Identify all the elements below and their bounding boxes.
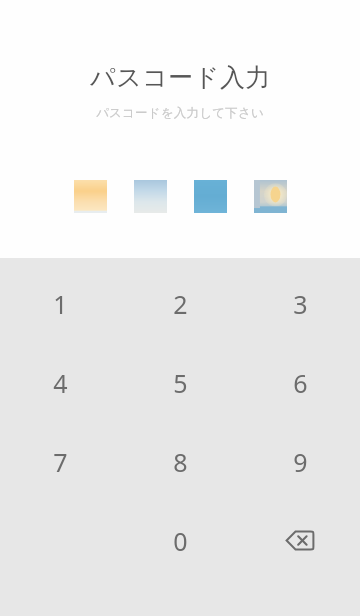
staticText: 1: [53, 287, 68, 321]
button[interactable]: 8: [120, 422, 240, 501]
staticText: 6: [293, 366, 308, 400]
button[interactable]: 5: [120, 343, 240, 422]
button[interactable]: Passcode digit 1: [74, 180, 107, 213]
button[interactable]: Passcode digit 2: [134, 180, 167, 213]
button[interactable]: 4: [0, 343, 120, 422]
button[interactable]: 1: [0, 264, 120, 343]
staticText: 0: [173, 524, 188, 558]
button[interactable]: 7: [0, 422, 120, 501]
staticText: 3: [293, 287, 308, 321]
button[interactable]: 6: [240, 343, 360, 422]
button[interactable]: Passcode digit 4: [254, 180, 287, 213]
staticText: 5: [173, 366, 188, 400]
staticText: パスコード入力: [90, 62, 271, 93]
button[interactable]: Passcode digit 3: [194, 180, 227, 213]
button[interactable]: 3: [240, 264, 360, 343]
staticText: 4: [53, 366, 68, 400]
button[interactable]: 2: [120, 264, 240, 343]
staticText: パスコードを入力して下さい: [96, 105, 264, 121]
button[interactable]: Delete: [240, 501, 360, 580]
staticText: 2: [173, 287, 188, 321]
button[interactable]: 0: [120, 501, 240, 580]
staticText: 8: [173, 445, 188, 479]
staticText: 9: [293, 445, 308, 479]
staticText: 7: [53, 445, 68, 479]
button[interactable]: 9: [240, 422, 360, 501]
